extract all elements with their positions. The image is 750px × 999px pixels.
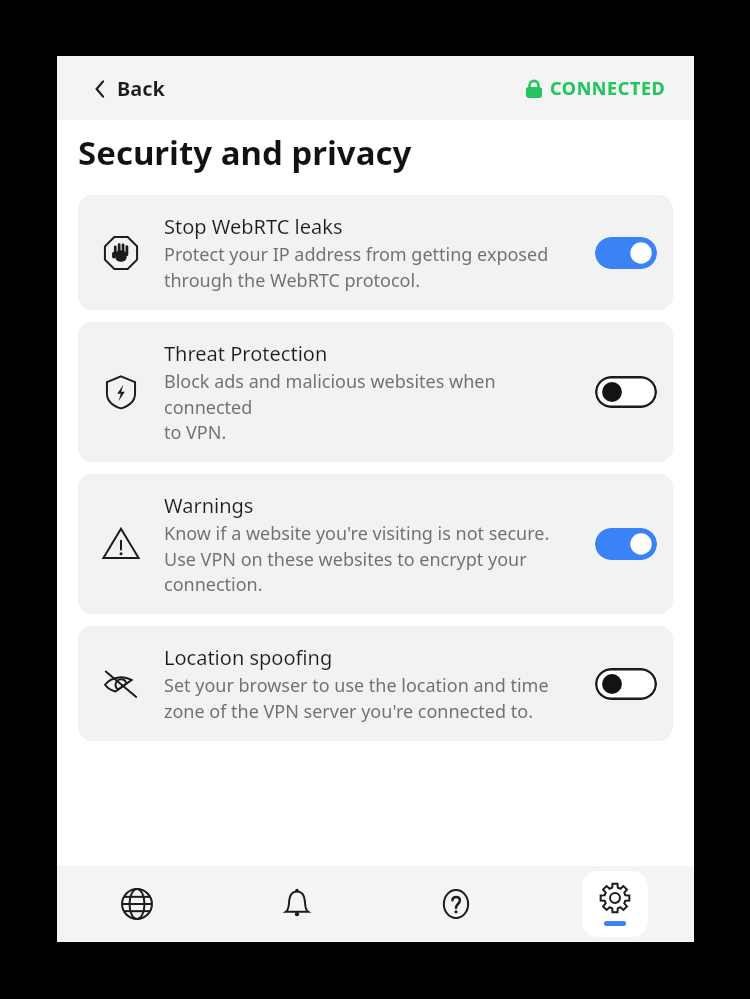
button[interactable]: Back [89, 69, 169, 108]
staticText: Block ads and malicious websites when co… [164, 369, 578, 444]
button[interactable]: Stop WebRTC leaks [78, 195, 673, 310]
button[interactable]: Settings [582, 871, 648, 937]
staticText: Security and privacy [78, 130, 412, 175]
button[interactable]: Threat Protection [78, 322, 673, 462]
button[interactable]: Toggle on [595, 237, 657, 269]
button[interactable]: Notifications [264, 871, 330, 937]
button[interactable]: Toggle off [595, 668, 657, 700]
staticText: Set your browser to use the location and… [164, 673, 549, 723]
staticText: Location spoofing [164, 644, 333, 671]
button[interactable]: Help [423, 871, 489, 937]
staticText: Back [117, 75, 165, 102]
staticText: Warnings [164, 492, 254, 519]
staticText: Stop WebRTC leaks [164, 213, 343, 240]
staticText: Know if a website you're visiting is not… [164, 521, 550, 596]
button[interactable]: Toggle on [595, 528, 657, 560]
button[interactable]: CONNECTED [522, 70, 670, 107]
staticText: CONNECTED [550, 76, 666, 101]
staticText: Threat Protection [164, 340, 328, 367]
button[interactable]: Location spoofing [78, 626, 673, 741]
button[interactable]: Toggle off [595, 376, 657, 408]
staticText: Protect your IP address from getting exp… [164, 242, 549, 292]
button[interactable]: Warnings [78, 474, 673, 614]
button[interactable]: Network [104, 871, 170, 937]
